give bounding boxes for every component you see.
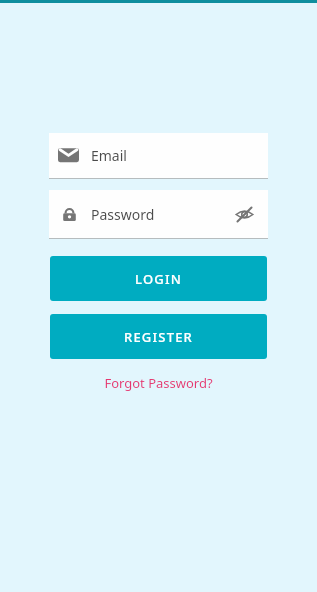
button[interactable]: Show password <box>229 199 259 229</box>
staticText: Password <box>91 205 229 224</box>
button[interactable]: Password <box>49 190 268 238</box>
button[interactable]: Email <box>49 133 268 178</box>
button[interactable]: Forgot Password? <box>96 371 221 395</box>
button[interactable]: REGISTER <box>50 314 267 359</box>
staticText: REGISTER <box>124 328 194 346</box>
staticText: Email <box>91 146 127 165</box>
staticText: Forgot Password? <box>104 374 213 392</box>
staticText: LOGIN <box>135 270 183 288</box>
button[interactable]: LOGIN <box>50 256 267 301</box>
